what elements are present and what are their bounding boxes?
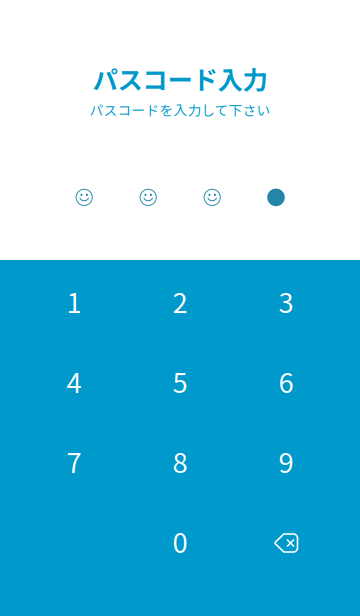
button[interactable]: Delete (233, 501, 339, 581)
button[interactable]: 3 (233, 261, 339, 341)
button[interactable]: 7 (21, 421, 127, 501)
staticText: 2 (172, 281, 187, 321)
staticText: 8 (172, 441, 187, 481)
staticText: 1 (66, 281, 81, 321)
staticText: 9 (278, 441, 293, 481)
staticText: 4 (66, 361, 81, 401)
button[interactable]: 8 (127, 421, 233, 501)
staticText: 0 (172, 521, 187, 561)
button[interactable]: 4 (21, 341, 127, 421)
staticText: パスコードを入力して下さい (89, 100, 270, 119)
button[interactable]: 9 (233, 421, 339, 501)
button[interactable]: 6 (233, 341, 339, 421)
staticText: 3 (278, 281, 293, 321)
staticText: パスコード入力 (92, 60, 267, 97)
button[interactable]: 5 (127, 341, 233, 421)
staticText: 7 (66, 441, 81, 481)
staticText: 6 (278, 361, 293, 401)
button[interactable]: 1 (21, 261, 127, 341)
staticText: 5 (172, 361, 187, 401)
button[interactable]: 2 (127, 261, 233, 341)
button[interactable]: 0 (127, 501, 233, 581)
